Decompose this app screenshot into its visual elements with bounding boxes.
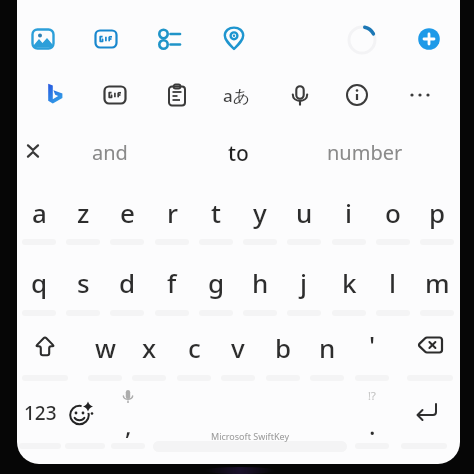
staticText: w: [95, 330, 116, 365]
staticText: z: [77, 195, 90, 230]
staticText: p: [429, 195, 446, 230]
button[interactable]: n: [305, 319, 349, 375]
staticText: c: [188, 330, 201, 365]
button[interactable]: [148, 17, 192, 61]
button[interactable]: aあ: [192, 72, 282, 118]
button[interactable]: [278, 74, 322, 118]
button[interactable]: m: [415, 254, 459, 310]
button[interactable]: t: [194, 184, 238, 240]
staticText: h: [252, 265, 269, 300]
staticText: k: [342, 265, 357, 300]
staticText: t: [211, 195, 221, 230]
button[interactable]: [84, 17, 128, 61]
button[interactable]: l: [371, 254, 415, 310]
staticText: e: [120, 195, 135, 230]
button[interactable]: c: [172, 319, 216, 375]
staticText: y: [253, 195, 267, 230]
staticText: d: [119, 265, 136, 300]
staticText: q: [31, 265, 48, 300]
button[interactable]: a: [17, 184, 61, 240]
button[interactable]: [21, 17, 65, 61]
staticText: aあ: [223, 84, 251, 107]
button[interactable]: [33, 73, 77, 117]
button[interactable]: [20, 322, 70, 372]
button[interactable]: ,: [106, 385, 150, 445]
button[interactable]: y: [238, 184, 282, 240]
button[interactable]: [93, 73, 137, 117]
button[interactable]: p: [415, 184, 459, 240]
button[interactable]: to: [178, 130, 298, 176]
button[interactable]: f: [150, 254, 194, 310]
staticText: b: [275, 330, 292, 365]
button[interactable]: [15, 133, 51, 169]
button[interactable]: d: [105, 254, 149, 310]
staticText: g: [208, 265, 225, 300]
staticText: Microsoft SwiftKey: [211, 430, 289, 442]
button[interactable]: [340, 18, 384, 62]
button[interactable]: r: [150, 184, 194, 240]
staticText: .: [369, 409, 376, 442]
button[interactable]: v: [216, 319, 260, 375]
staticText: v: [231, 330, 245, 365]
button[interactable]: i: [327, 184, 371, 240]
staticText: f: [167, 265, 177, 300]
staticText: n: [319, 330, 336, 365]
staticText: a: [32, 195, 47, 230]
button[interactable]: z: [61, 184, 105, 240]
staticText: 123: [24, 400, 57, 426]
staticText: l: [389, 265, 397, 300]
staticText: i: [345, 195, 353, 230]
button[interactable]: q: [17, 254, 61, 310]
staticText: and: [92, 139, 128, 166]
button[interactable]: u: [282, 184, 326, 240]
staticText: o: [385, 195, 401, 230]
button[interactable]: !?: [350, 385, 394, 445]
button[interactable]: b: [261, 319, 305, 375]
staticText: !?: [368, 388, 376, 403]
staticText: m: [425, 265, 450, 300]
button[interactable]: [335, 73, 379, 117]
staticText: r: [167, 195, 178, 230]
staticText: u: [296, 195, 313, 230]
staticText: ,: [125, 409, 132, 442]
button[interactable]: ': [350, 316, 394, 372]
staticText: x: [142, 330, 157, 365]
button[interactable]: [61, 394, 101, 434]
button[interactable]: h: [238, 254, 282, 310]
button[interactable]: [405, 322, 455, 372]
button[interactable]: [398, 73, 442, 117]
button[interactable]: [401, 387, 451, 437]
staticText: number: [327, 139, 403, 166]
button[interactable]: k: [327, 254, 371, 310]
button[interactable]: w: [83, 319, 127, 375]
staticText: to: [228, 139, 249, 168]
button[interactable]: o: [371, 184, 415, 240]
staticText: s: [77, 265, 90, 300]
button[interactable]: j: [282, 254, 326, 310]
staticText: j: [300, 265, 308, 300]
button[interactable]: e: [105, 184, 149, 240]
staticText: ': [369, 327, 376, 362]
button[interactable]: x: [127, 319, 171, 375]
button[interactable]: [212, 17, 256, 61]
button[interactable]: g: [194, 254, 238, 310]
button[interactable]: 123: [15, 388, 65, 438]
button[interactable]: and: [50, 129, 170, 175]
button[interactable]: Microsoft SwiftKey: [151, 388, 349, 448]
button[interactable]: [155, 73, 199, 117]
button[interactable]: number: [305, 129, 425, 175]
button[interactable]: [407, 17, 451, 61]
button[interactable]: s: [61, 254, 105, 310]
